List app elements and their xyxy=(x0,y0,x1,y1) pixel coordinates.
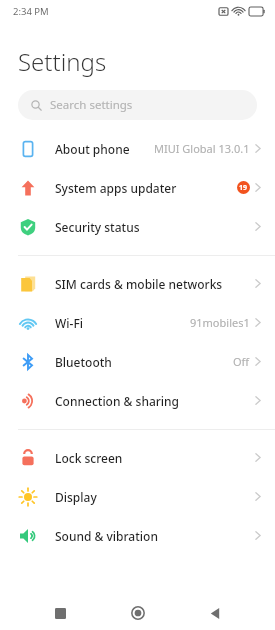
button[interactable]: Wi-Fi xyxy=(0,303,275,342)
staticText: 19 xyxy=(239,183,248,193)
staticText: System apps updater xyxy=(55,180,177,196)
button[interactable]: About phone xyxy=(0,129,275,168)
staticText: Lock screen xyxy=(55,450,123,466)
button[interactable]: System apps updater xyxy=(0,168,275,207)
button[interactable]: SIM cards & mobile networks xyxy=(0,264,275,303)
button[interactable]: Back xyxy=(198,596,232,630)
button[interactable]: Sound & vibration xyxy=(0,516,275,555)
button[interactable]: Security status xyxy=(0,207,275,246)
staticText: MIUI Global 13.0.1 xyxy=(154,141,250,156)
staticText: Settings xyxy=(18,45,107,78)
button[interactable]: Search settings xyxy=(18,90,257,120)
staticText: 91mobiles1 xyxy=(190,315,250,330)
button[interactable]: Bluetooth xyxy=(0,342,275,381)
staticText: 2:34 PM xyxy=(13,5,49,18)
button[interactable]: Lock screen xyxy=(0,438,275,477)
button[interactable]: Home xyxy=(121,596,155,630)
staticText: Search settings xyxy=(50,97,133,113)
staticText: Bluetooth xyxy=(55,354,112,370)
staticText: About phone xyxy=(55,141,130,157)
staticText: Sound & vibration xyxy=(55,528,158,544)
staticText: SIM cards & mobile networks xyxy=(55,276,223,292)
staticText: Connection & sharing xyxy=(55,393,180,409)
staticText: Wi-Fi xyxy=(55,315,83,331)
button[interactable]: Display xyxy=(0,477,275,516)
staticText: Display xyxy=(55,489,97,505)
staticText: Security status xyxy=(55,219,140,235)
button[interactable]: Connection & sharing xyxy=(0,381,275,420)
staticText: Off xyxy=(233,354,250,369)
button[interactable]: Recent apps xyxy=(43,596,77,630)
